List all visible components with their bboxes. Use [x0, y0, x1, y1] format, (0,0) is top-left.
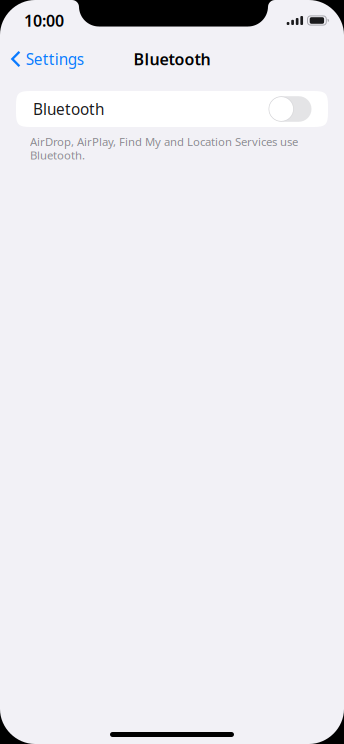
staticText: Bluetooth	[133, 48, 210, 70]
staticText: AirDrop, AirPlay, Find My and Location S…	[30, 134, 298, 163]
staticText: Settings	[26, 49, 84, 69]
button[interactable]: Bluetooth	[16, 91, 328, 127]
button[interactable]: Settings	[0, 41, 110, 77]
staticText: Bluetooth	[33, 99, 104, 119]
staticText: 10:00	[24, 10, 64, 31]
